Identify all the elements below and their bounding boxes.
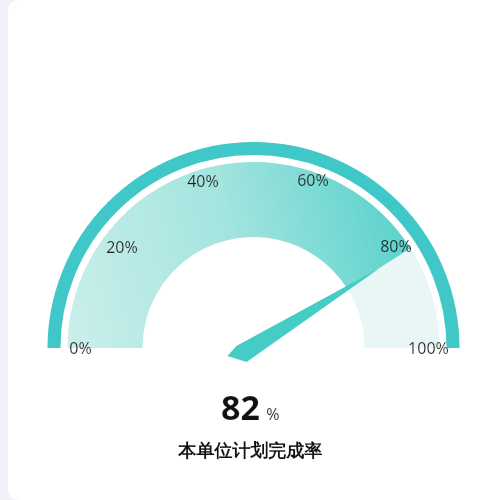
staticText: % xyxy=(266,403,280,425)
staticText: 20% xyxy=(106,236,138,258)
staticText: 82 xyxy=(221,384,260,430)
button[interactable] xyxy=(8,0,500,500)
staticText: 80% xyxy=(380,235,412,257)
staticText: 本单位计划完成率 xyxy=(178,440,322,463)
staticText: 100% xyxy=(408,337,449,359)
staticText: 40% xyxy=(187,170,219,192)
staticText: 60% xyxy=(297,169,329,191)
staticText: 0% xyxy=(69,337,92,359)
